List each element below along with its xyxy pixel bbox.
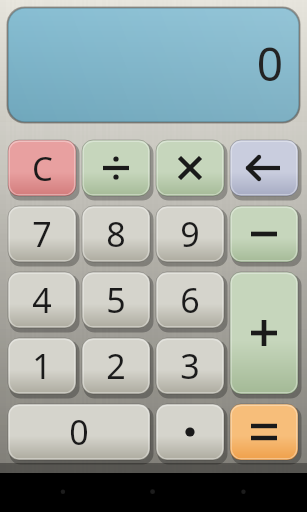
- staticText: 1: [32, 343, 52, 389]
- button[interactable]: Decimal point: [156, 404, 226, 462]
- staticText: 8: [106, 211, 126, 257]
- staticText: 0: [69, 409, 89, 455]
- button[interactable]: 9: [156, 206, 226, 264]
- button[interactable]: 3: [156, 338, 226, 396]
- staticText: 2: [106, 343, 126, 389]
- staticText: 4: [32, 277, 52, 323]
- button[interactable]: C: [8, 140, 78, 198]
- button[interactable]: 4: [8, 272, 78, 330]
- button[interactable]: 0: [8, 404, 152, 462]
- button[interactable]: 7: [8, 206, 78, 264]
- button[interactable]: Minus: [230, 206, 300, 264]
- staticText: 6: [180, 277, 200, 323]
- button[interactable]: 6: [156, 272, 226, 330]
- staticText: C: [32, 146, 53, 191]
- staticText: 9: [180, 211, 200, 257]
- button[interactable]: Equals: [230, 404, 300, 462]
- staticText: 5: [106, 277, 126, 323]
- button[interactable]: 2: [82, 338, 152, 396]
- button[interactable]: 1: [8, 338, 78, 396]
- button[interactable]: Divide: [82, 140, 152, 198]
- button[interactable]: 8: [82, 206, 152, 264]
- button[interactable]: Backspace: [230, 140, 300, 198]
- staticText: 0: [256, 32, 283, 95]
- staticText: 7: [32, 211, 52, 257]
- button[interactable]: Multiply: [156, 140, 226, 198]
- button[interactable]: 5: [82, 272, 152, 330]
- button[interactable]: Plus: [230, 272, 300, 396]
- staticText: 3: [180, 343, 200, 389]
